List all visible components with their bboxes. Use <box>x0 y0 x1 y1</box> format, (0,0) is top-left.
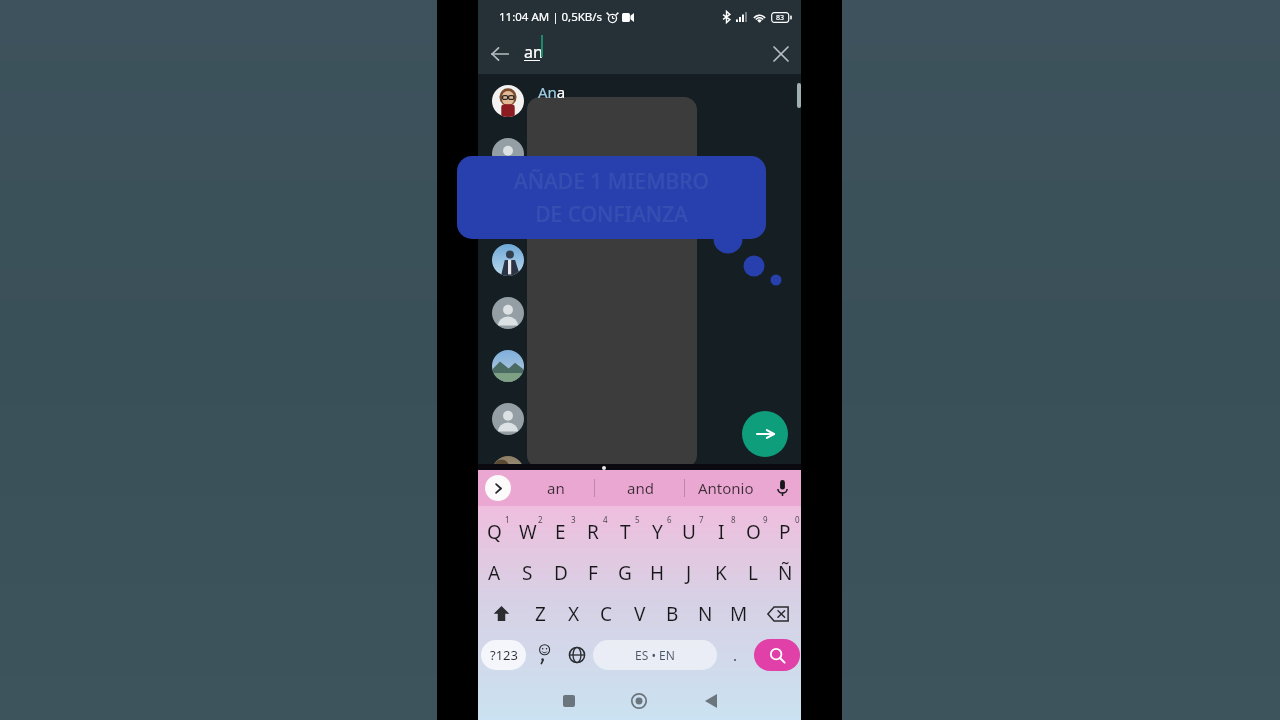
button[interactable]: an <box>518 470 594 506</box>
staticText: I <box>718 519 725 545</box>
staticText: Ana <box>538 82 566 102</box>
button[interactable] <box>478 233 801 286</box>
staticText: Y <box>652 519 663 545</box>
button[interactable]: Show more suggestions <box>485 475 511 501</box>
staticText: M <box>730 601 748 627</box>
button[interactable]: Q <box>478 511 511 552</box>
button[interactable] <box>478 392 801 445</box>
staticText: 9 <box>763 514 768 525</box>
button[interactable]: and <box>595 470 685 506</box>
staticText: 0 <box>795 514 800 525</box>
staticText: S <box>522 560 533 586</box>
button[interactable]: N <box>689 593 722 634</box>
staticText: DE CONFIANZA <box>535 200 688 229</box>
staticText: W <box>519 519 537 545</box>
staticText: T <box>620 519 631 545</box>
button[interactable]: Backspace <box>755 593 801 634</box>
button[interactable]: P <box>769 511 801 552</box>
staticText: ES • EN <box>635 647 675 663</box>
staticText: Q <box>487 519 502 545</box>
staticText: O <box>746 519 761 545</box>
staticText: V <box>634 601 646 627</box>
button[interactable]: Z <box>524 593 557 634</box>
staticText: 7 <box>699 514 704 525</box>
staticText: N <box>698 601 713 627</box>
button[interactable]: H <box>641 552 673 593</box>
button[interactable]: T <box>609 511 641 552</box>
staticText: R <box>587 519 599 545</box>
button[interactable]: Voice input <box>768 470 796 506</box>
button[interactable]: U <box>673 511 705 552</box>
button[interactable]: Antonio <box>685 470 767 506</box>
staticText: L <box>748 560 758 586</box>
staticText: 2 <box>538 514 543 525</box>
staticText: F <box>588 560 598 586</box>
button[interactable]: E <box>544 511 577 552</box>
staticText: Antonio <box>698 478 754 498</box>
button[interactable]: B <box>656 593 689 634</box>
button[interactable]: Search <box>754 639 800 671</box>
button[interactable]: Back <box>696 678 726 720</box>
staticText: AÑADE 1 MIEMBRO <box>514 167 709 196</box>
button[interactable] <box>478 445 801 498</box>
staticText: D <box>554 560 568 586</box>
button[interactable]: Shift <box>478 593 524 634</box>
button[interactable]: V <box>623 593 656 634</box>
button[interactable]: Change language <box>564 634 590 675</box>
button[interactable]: Back <box>480 34 520 74</box>
button[interactable]: C <box>590 593 623 634</box>
button[interactable]: Emoji <box>531 634 557 675</box>
button[interactable]: X <box>557 593 590 634</box>
button[interactable]: . <box>724 634 746 675</box>
button[interactable] <box>478 339 801 392</box>
staticText: 4 <box>603 514 608 525</box>
button[interactable]: W <box>511 511 544 552</box>
button[interactable]: A <box>478 552 511 593</box>
button[interactable]: R <box>577 511 609 552</box>
button[interactable]: L <box>737 552 769 593</box>
button[interactable]: G <box>609 552 641 593</box>
button[interactable]: ES • EN <box>593 640 717 670</box>
button[interactable]: Clear search <box>761 34 801 74</box>
button[interactable]: O <box>737 511 769 552</box>
staticText: E <box>555 519 566 545</box>
staticText: 5 <box>635 514 640 525</box>
staticText: A <box>488 560 501 586</box>
button[interactable]: D <box>544 552 577 593</box>
button[interactable]: J <box>673 552 705 593</box>
button[interactable]: Home <box>624 678 654 720</box>
button[interactable] <box>478 127 801 180</box>
button[interactable] <box>478 180 801 233</box>
button[interactable]: Y <box>641 511 673 552</box>
staticText: B <box>666 601 679 627</box>
staticText: J <box>686 560 692 586</box>
button[interactable]: S <box>511 552 544 593</box>
staticText: U <box>682 519 696 545</box>
staticText: ?123 <box>490 646 518 664</box>
staticText: X <box>568 601 580 627</box>
button[interactable]: Continue <box>742 411 788 457</box>
button[interactable]: F <box>577 552 609 593</box>
staticText: 83 <box>776 13 785 23</box>
staticText: . <box>733 645 738 665</box>
button[interactable]: Recents <box>554 678 584 720</box>
staticText: an <box>524 41 543 63</box>
button[interactable]: M <box>722 593 755 634</box>
button[interactable]: Ñ <box>769 552 801 593</box>
button[interactable]: I <box>705 511 737 552</box>
staticText: H <box>650 560 665 586</box>
staticText: Ñ <box>778 560 793 586</box>
staticText: 3 <box>571 514 576 525</box>
button[interactable] <box>478 74 801 127</box>
staticText: 6 <box>667 514 672 525</box>
staticText: K <box>715 560 727 586</box>
button[interactable] <box>478 286 801 339</box>
staticText: C <box>600 601 613 627</box>
staticText: 1 <box>505 514 510 525</box>
button[interactable]: K <box>705 552 737 593</box>
button[interactable]: ?123 <box>481 640 526 670</box>
staticText: 11:04 AM | 0,5KB/s <box>499 9 603 25</box>
staticText: G <box>618 560 632 586</box>
staticText: P <box>779 519 791 545</box>
staticText: Z <box>535 601 546 627</box>
